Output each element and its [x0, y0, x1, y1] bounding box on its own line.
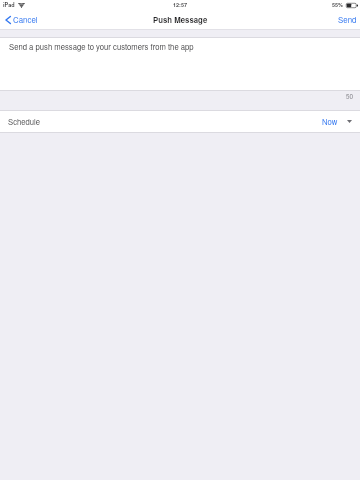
staticText: iPad: [3, 1, 15, 9]
button[interactable]: Schedule: [0, 110, 360, 133]
button[interactable]: Send a push message to your customers fr…: [0, 37, 360, 91]
staticText: 50: [346, 92, 354, 101]
staticText: 55%: [332, 1, 344, 9]
other: Choose schedule: [347, 120, 352, 123]
staticText: 12:57: [173, 1, 188, 9]
other: Battery 55 percent: [346, 3, 358, 8]
staticText: Now: [322, 116, 338, 127]
staticText: Cancel: [13, 14, 38, 25]
button[interactable]: Send: [335, 13, 360, 29]
staticText: Schedule: [8, 116, 41, 127]
staticText: Send a push message to your customers fr…: [9, 41, 194, 52]
staticText: Send: [338, 14, 357, 25]
button[interactable]: Cancel: [0, 13, 44, 29]
other: Wi-Fi: [18, 3, 25, 8]
staticText: Push Message: [153, 14, 208, 25]
